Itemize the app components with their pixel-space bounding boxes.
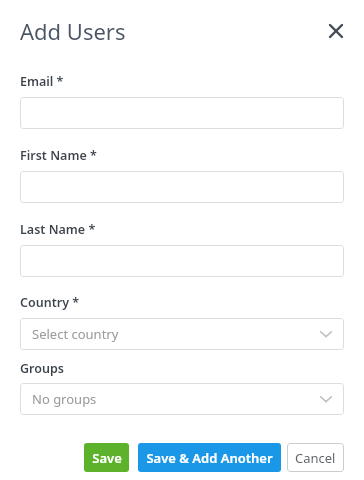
staticText: Select country bbox=[32, 325, 119, 343]
button[interactable]: Cancel bbox=[287, 443, 344, 472]
button[interactable]: Close bbox=[320, 15, 352, 47]
staticText: Country * bbox=[20, 294, 80, 311]
button[interactable]: Select country bbox=[20, 318, 344, 350]
button[interactable] bbox=[20, 97, 344, 129]
staticText: Add Users bbox=[20, 16, 126, 46]
button[interactable] bbox=[20, 171, 344, 203]
button[interactable]: Save bbox=[84, 443, 129, 472]
button[interactable] bbox=[20, 245, 344, 277]
staticText: Save & Add Another bbox=[146, 449, 273, 467]
staticText: First Name * bbox=[20, 147, 97, 164]
staticText: Email * bbox=[20, 73, 64, 90]
staticText: Last Name * bbox=[20, 221, 96, 238]
staticText: Groups bbox=[20, 360, 64, 377]
staticText: No groups bbox=[32, 390, 97, 408]
staticText: Cancel bbox=[295, 449, 336, 467]
staticText: Save bbox=[92, 449, 122, 467]
button[interactable]: Save & Add Another bbox=[138, 443, 281, 472]
button[interactable]: No groups bbox=[20, 383, 344, 415]
